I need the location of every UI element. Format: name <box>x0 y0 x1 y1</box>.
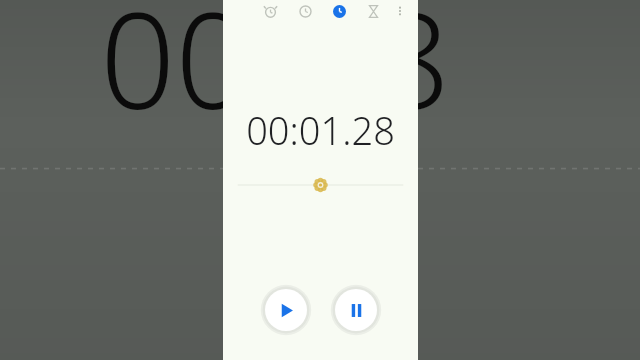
button[interactable]: Stopwatch <box>356 0 390 22</box>
staticText: 00 <box>100 0 251 148</box>
staticText: 28 <box>299 0 450 148</box>
staticText: 00:01.28 <box>223 104 418 156</box>
button[interactable]: Pause <box>335 289 377 331</box>
button[interactable]: Alarm <box>253 0 288 22</box>
button[interactable]: More options <box>390 1 410 21</box>
button[interactable]: Start <box>265 289 307 331</box>
button[interactable]: Timer <box>322 0 356 22</box>
button[interactable]: Clock <box>288 0 322 22</box>
